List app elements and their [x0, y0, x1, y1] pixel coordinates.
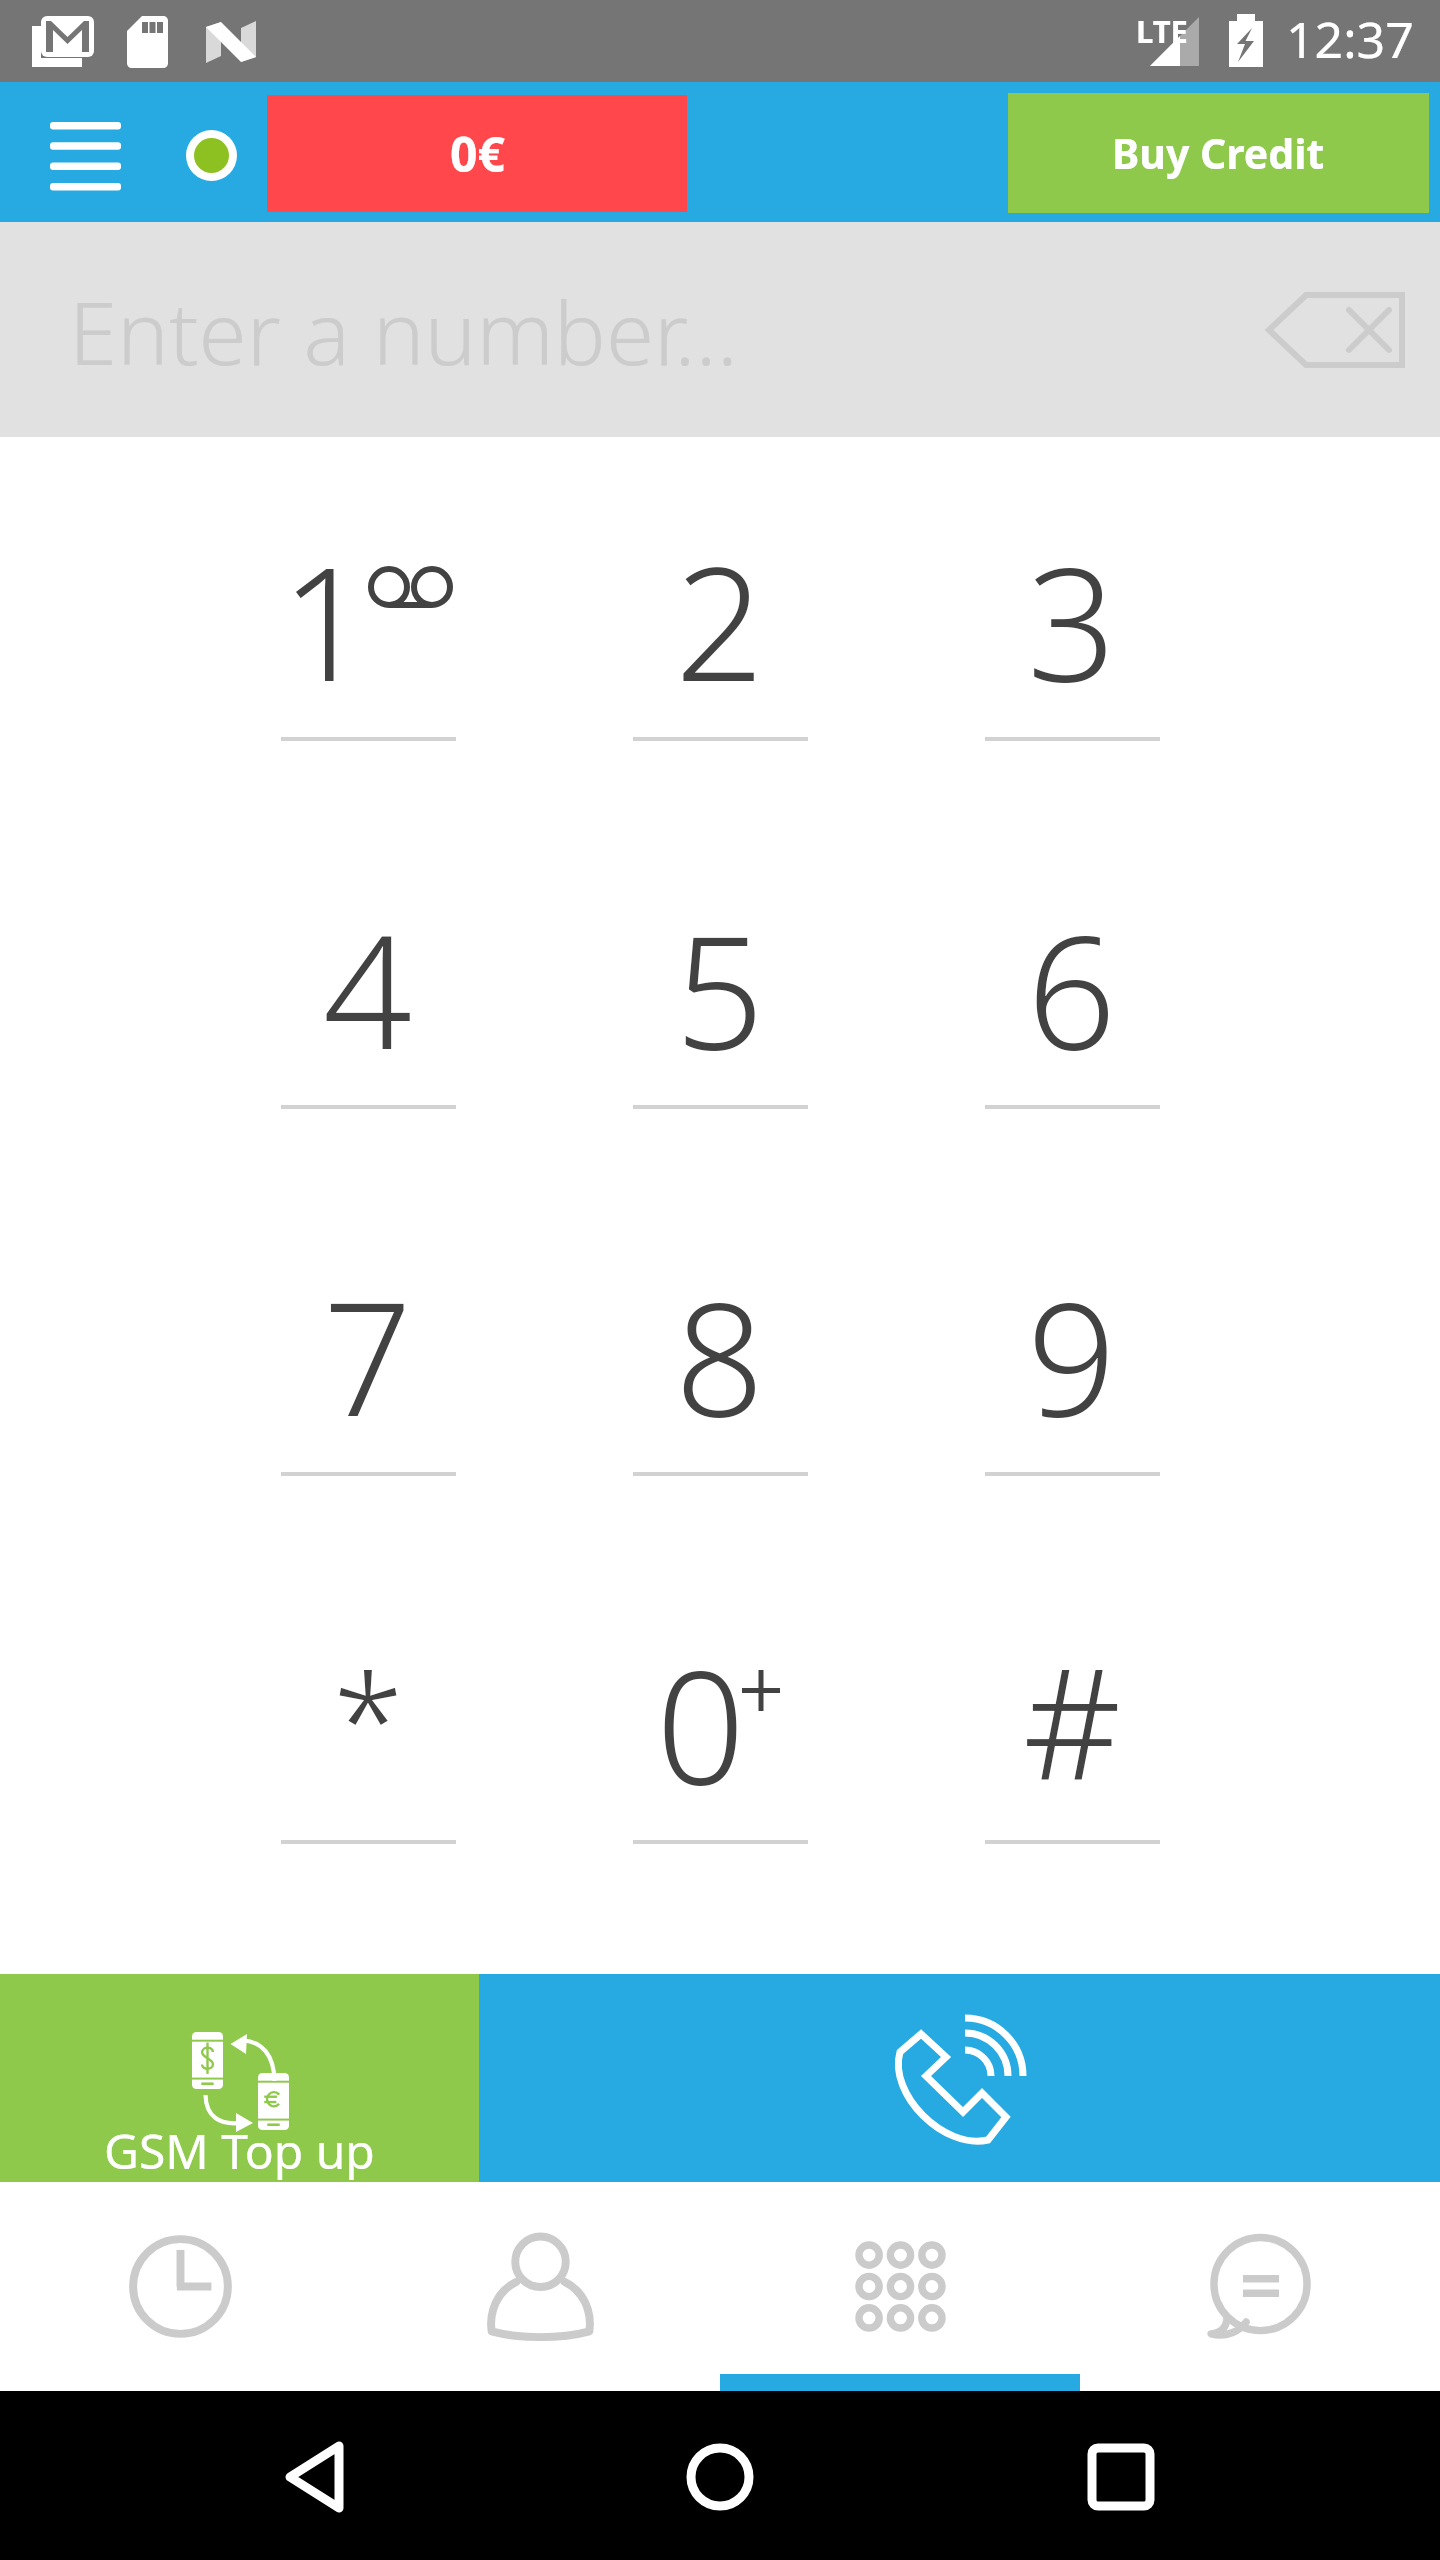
button[interactable]: Buy Credit: [1008, 93, 1429, 213]
staticText: GSM Top up: [104, 2118, 375, 2183]
button[interactable]: Status: [173, 85, 249, 225]
staticText: #: [1023, 1617, 1122, 1824]
button[interactable]: #: [896, 1540, 1248, 1908]
staticText: 9: [1027, 1249, 1117, 1461]
staticText: 7: [323, 1249, 413, 1461]
staticText: *: [333, 1631, 404, 1805]
button[interactable]: Keypad: [720, 2182, 1080, 2391]
button[interactable]: Menu: [10, 86, 160, 226]
staticText: Buy Credit: [1112, 125, 1325, 181]
staticText: LTE: [1136, 10, 1188, 52]
button[interactable]: Messages: [1080, 2182, 1440, 2391]
button[interactable]: 8: [544, 1172, 896, 1540]
staticText: 1: [281, 514, 371, 726]
button[interactable]: Backspace: [1248, 273, 1423, 387]
staticText: 3: [1027, 514, 1117, 726]
button[interactable]: 9: [896, 1172, 1248, 1540]
button[interactable]: 0: [544, 1540, 896, 1908]
staticText: 2: [675, 514, 765, 726]
button[interactable]: 5: [544, 805, 896, 1173]
staticText: Enter a number...: [69, 272, 739, 390]
button[interactable]: 4: [192, 805, 544, 1173]
staticText: 8: [675, 1249, 765, 1461]
button[interactable]: *: [192, 1540, 544, 1908]
staticText: 0: [656, 1617, 746, 1829]
staticText: 4: [323, 882, 413, 1094]
button[interactable]: Recent calls: [0, 2182, 360, 2391]
button[interactable]: 7: [192, 1172, 544, 1540]
button[interactable]: 3: [896, 437, 1248, 805]
staticText: 5: [675, 882, 765, 1094]
staticText: 0€: [450, 121, 505, 186]
button[interactable]: 0€: [267, 95, 687, 212]
staticText: 12:37: [1286, 5, 1414, 73]
button[interactable]: GSM Top up: [0, 1974, 479, 2182]
button[interactable]: Call: [479, 1974, 1440, 2182]
button[interactable]: 1: [192, 437, 544, 805]
staticText: 6: [1027, 882, 1117, 1094]
button[interactable]: Contacts: [360, 2182, 720, 2391]
button[interactable]: 6: [896, 805, 1248, 1173]
button[interactable]: 2: [544, 437, 896, 805]
